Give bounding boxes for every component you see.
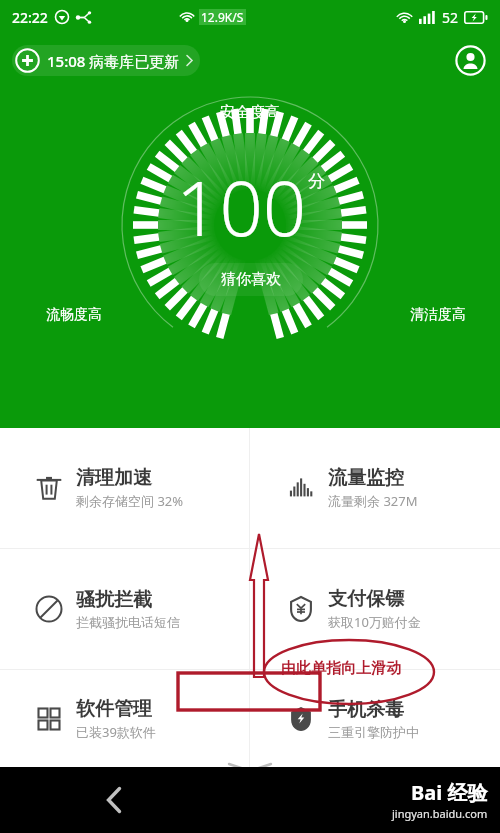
staticText: 流量监控	[328, 466, 404, 490]
button[interactable]: 流量监控	[250, 428, 500, 548]
staticText: 15:08 病毒库已更新	[47, 51, 180, 71]
staticText: 安全度高	[220, 103, 280, 122]
staticText: 手机杀毒	[328, 698, 404, 722]
staticText: 清洁度高	[410, 306, 466, 324]
staticText: 已装39款软件	[76, 723, 156, 741]
button[interactable]: Back	[92, 778, 136, 822]
staticText: 三重引擎防护中	[328, 724, 419, 740]
staticText: 流量剩余 327M	[328, 492, 418, 510]
staticText: 由此单指向上滑动	[281, 659, 401, 678]
button[interactable]: 清理加速	[0, 428, 249, 548]
staticText: 骚扰拦截	[76, 588, 152, 612]
staticText: 剩余存储空间 32%	[76, 492, 184, 510]
staticText: jingyan.baidu.com	[392, 806, 488, 821]
staticText: 52	[442, 8, 459, 27]
button[interactable]: 15:08 病毒库已更新	[12, 45, 200, 76]
button[interactable]: 骚扰拦截	[0, 549, 249, 669]
staticText: 清理加速	[76, 466, 152, 490]
staticText: 分	[308, 171, 325, 192]
staticText: 100	[176, 155, 307, 259]
button[interactable]: Account	[452, 42, 488, 78]
staticText: 获取10万赔付金	[328, 613, 421, 631]
button[interactable]: 手机杀毒	[250, 670, 500, 767]
staticText: 猜你喜欢	[221, 270, 281, 289]
button[interactable]: 猜你喜欢	[199, 263, 303, 296]
staticText: 流畅度高	[46, 306, 102, 324]
button[interactable]: 支付保镖	[250, 549, 500, 669]
staticText: 12.9K/S	[201, 9, 244, 25]
staticText: 软件管理	[76, 697, 152, 721]
staticText: Bai 经验	[411, 779, 488, 806]
staticText: 拦截骚扰电话短信	[76, 614, 180, 630]
button[interactable]: 软件管理	[0, 670, 249, 767]
staticText: 支付保镖	[328, 587, 404, 611]
staticText: 22:22	[12, 8, 48, 27]
